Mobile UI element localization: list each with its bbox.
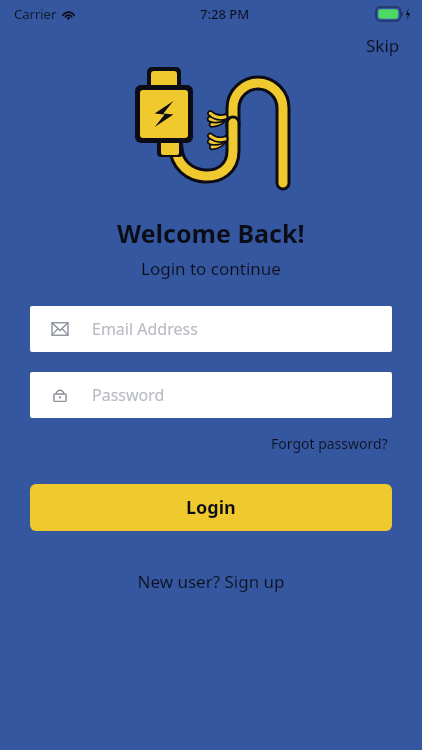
button[interactable]: Email Address bbox=[30, 306, 392, 352]
staticText: Welcome Back! bbox=[117, 216, 305, 250]
staticText: Carrier bbox=[14, 5, 57, 23]
button[interactable]: Login bbox=[30, 484, 392, 531]
button[interactable]: Password bbox=[30, 372, 392, 418]
staticText: New user? Sign up bbox=[137, 570, 285, 593]
staticText: Skip bbox=[366, 34, 400, 57]
button[interactable]: New user? Sign up bbox=[129, 566, 293, 597]
staticText: 7:28 PM bbox=[200, 5, 250, 23]
staticText: Forgot password? bbox=[271, 434, 388, 453]
staticText: Login to continue bbox=[141, 257, 281, 280]
staticText: Email Address bbox=[92, 318, 198, 340]
staticText: Login bbox=[186, 495, 236, 520]
staticText: Password bbox=[92, 384, 165, 406]
button[interactable]: Skip bbox=[360, 30, 406, 61]
button[interactable]: Forgot password? bbox=[267, 431, 392, 456]
